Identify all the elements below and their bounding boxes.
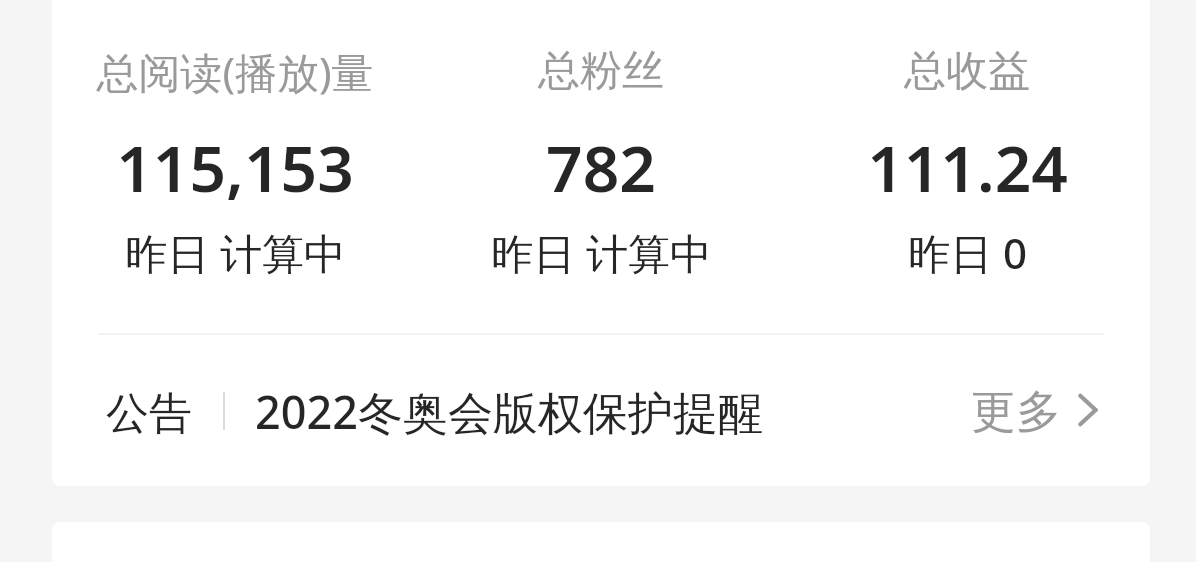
staticText: 昨日 0: [908, 224, 1027, 281]
staticText: 昨日 计算中: [125, 224, 346, 281]
staticText: 2022冬奥会版权保护提醒: [255, 381, 763, 442]
button[interactable]: 总阅读(播放)量: [52, 42, 418, 281]
staticText: 总阅读(播放)量: [96, 43, 374, 100]
staticText: 更多: [971, 384, 1061, 441]
staticText: 公告: [106, 387, 192, 441]
staticText: 115,153: [116, 124, 354, 202]
staticText: 总收益: [904, 45, 1030, 98]
button[interactable]: 总收益: [784, 42, 1150, 281]
staticText: 111.24: [867, 124, 1068, 202]
staticText: 总粉丝: [538, 45, 664, 98]
button[interactable]: 公告: [52, 335, 1150, 486]
button[interactable]: 总粉丝: [418, 42, 784, 281]
other: More announcements: [1076, 393, 1100, 427]
staticText: 782: [546, 124, 656, 202]
button[interactable]: 更多: [971, 335, 1150, 486]
staticText: 昨日 计算中: [491, 224, 712, 281]
